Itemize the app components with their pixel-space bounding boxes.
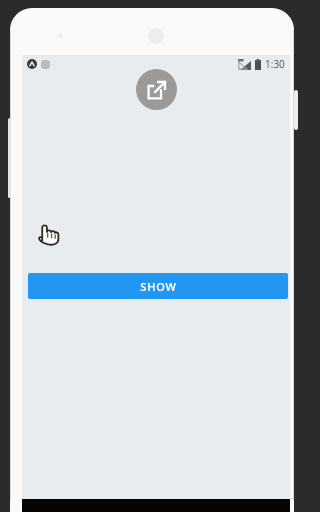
button[interactable]: SHOW [28, 273, 288, 299]
staticText: SHOW [140, 279, 177, 294]
staticText: 1:30 [265, 57, 285, 71]
button[interactable]: Open in new window [136, 69, 177, 110]
